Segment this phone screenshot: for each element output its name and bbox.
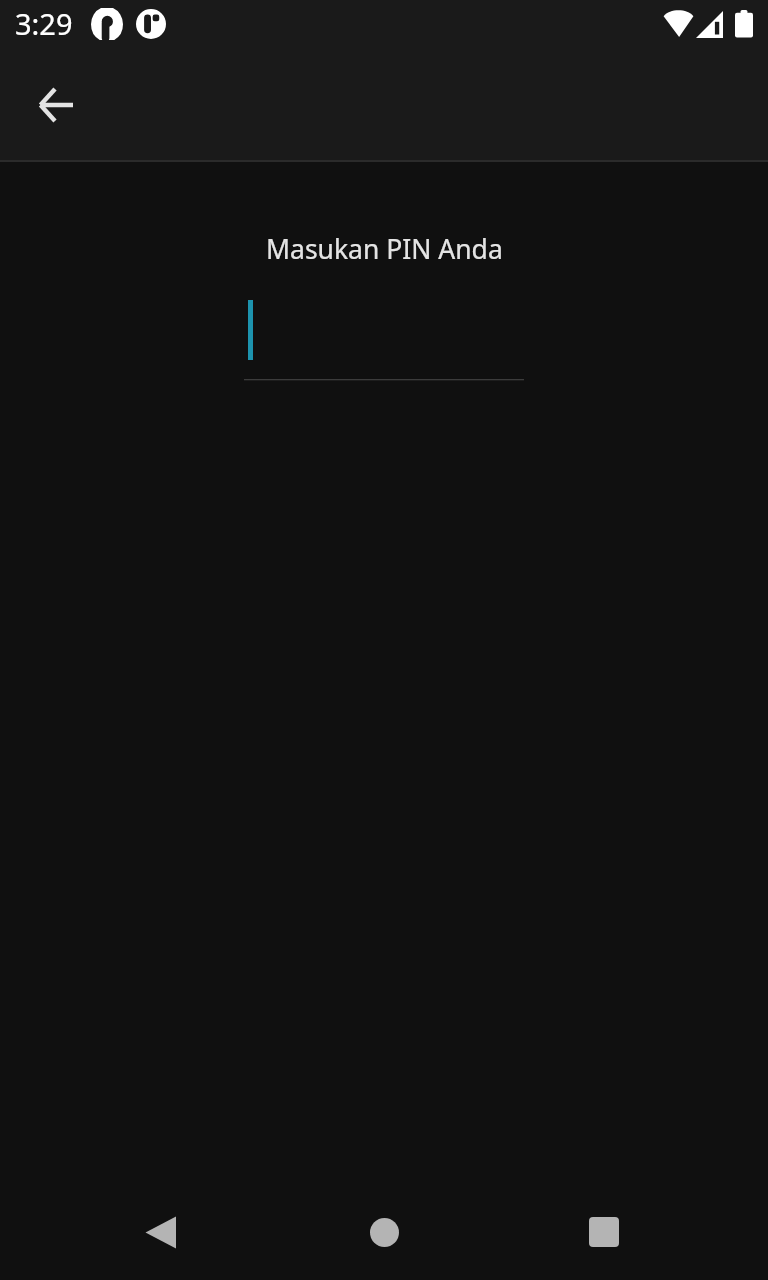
- button[interactable]: Back: [128, 1200, 192, 1264]
- button[interactable]: Back: [17, 66, 95, 144]
- staticText: Masukan PIN Anda: [266, 231, 503, 267]
- button[interactable]: Recent apps: [572, 1200, 636, 1264]
- staticText: 3:29: [15, 4, 73, 43]
- button[interactable]: PIN input: [244, 295, 524, 381]
- button[interactable]: Home: [352, 1200, 416, 1264]
